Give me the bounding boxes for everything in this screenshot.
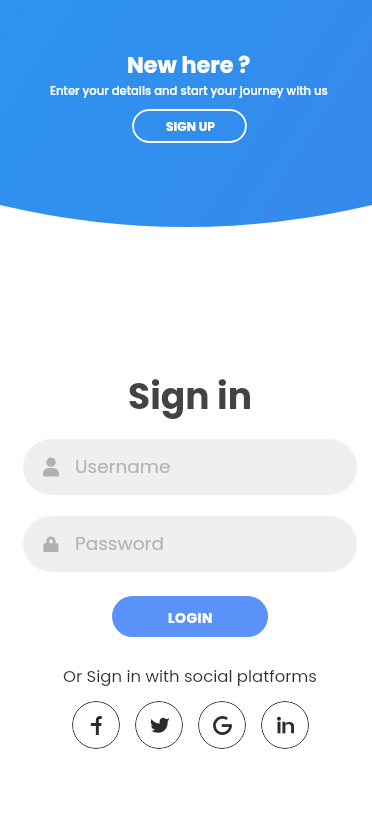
staticText: LOGIN [168,609,213,628]
button[interactable]: Twitter [135,701,183,749]
staticText: New here ? [127,50,251,81]
button[interactable]: Google [198,701,246,749]
button[interactable]: LOGIN [112,596,268,637]
staticText: Password [75,531,164,557]
staticText: Sign in [128,371,252,421]
staticText: SIGN UP [166,118,216,135]
staticText: Username [75,454,171,480]
button[interactable]: Password [23,516,357,572]
button[interactable]: Facebook [72,701,120,749]
button[interactable]: Username [23,439,357,495]
button[interactable]: SIGN UP [132,109,247,143]
button[interactable]: LinkedIn [261,701,309,749]
staticText: Or Sign in with social platforms [63,665,317,688]
staticText: Enter your details and start your journe… [50,83,328,99]
